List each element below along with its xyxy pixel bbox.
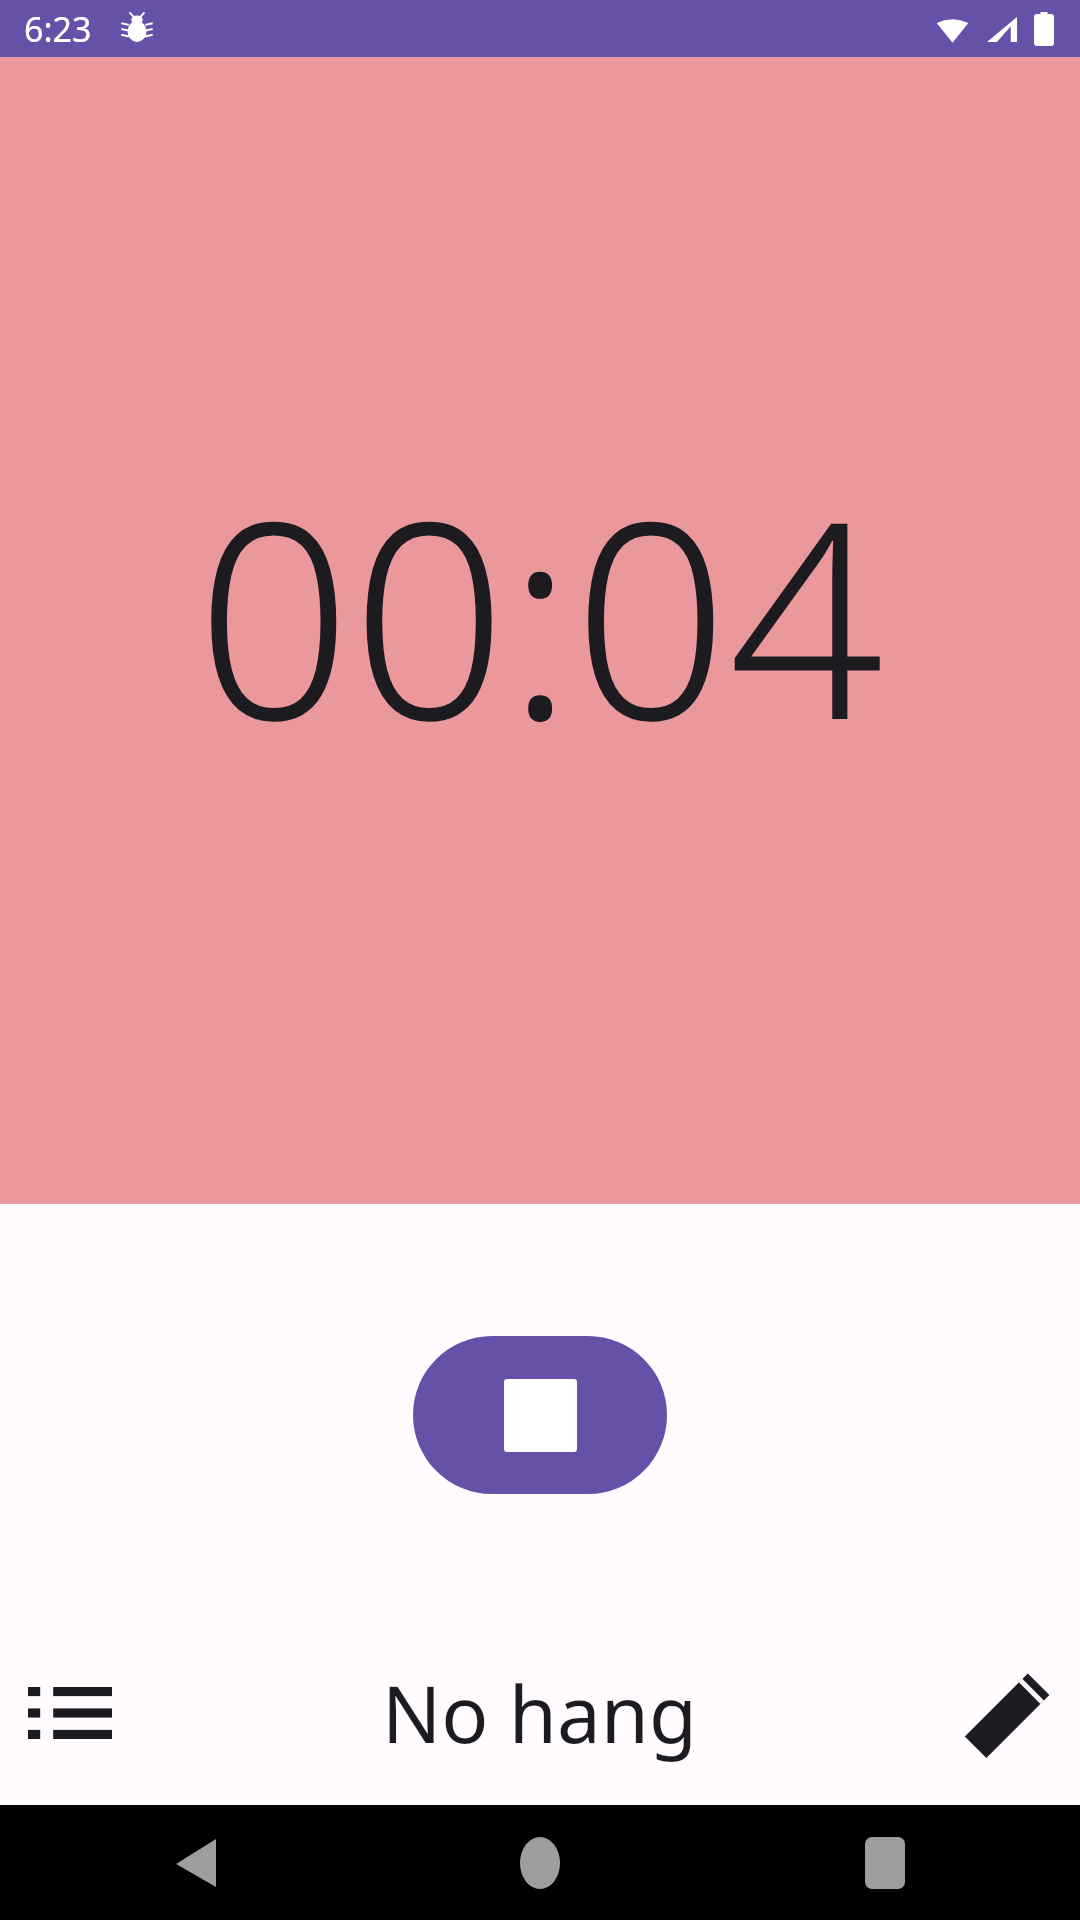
staticText: 00:04 (196, 428, 884, 798)
button[interactable]: Recent apps (840, 1818, 930, 1908)
staticText: No hang (382, 1660, 697, 1766)
button[interactable]: List (14, 1657, 126, 1769)
staticText: 6:23 (24, 6, 92, 52)
button[interactable]: Home (495, 1818, 585, 1908)
button[interactable]: 00:04 (0, 57, 1080, 1204)
button[interactable]: Stop (413, 1336, 667, 1494)
button[interactable]: Back (150, 1818, 240, 1908)
button[interactable]: Edit (952, 1657, 1064, 1769)
button[interactable]: No hang (126, 1620, 952, 1805)
